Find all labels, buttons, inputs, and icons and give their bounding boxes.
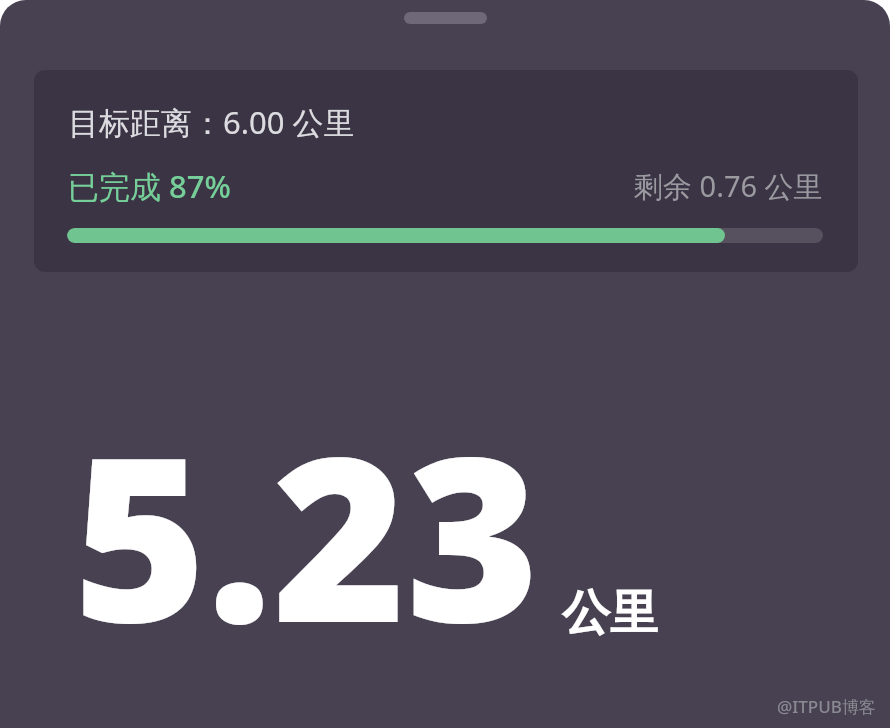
staticText: 剩余 0.76 公里 — [634, 166, 823, 206]
button[interactable]: 目标距离：6.00 公里 — [34, 70, 858, 272]
staticText: @ITPUB博客 — [777, 695, 876, 718]
staticText: 已完成 87% — [68, 165, 231, 207]
staticText: 5.23 — [73, 378, 540, 689]
staticText: 公里 — [562, 583, 658, 643]
staticText: 目标距离：6.00 公里 — [68, 101, 355, 143]
